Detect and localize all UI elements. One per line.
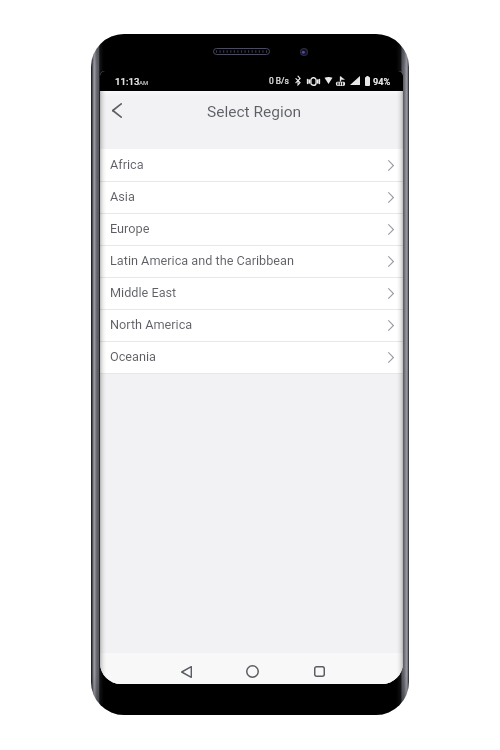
button[interactable]: Oceania [100, 342, 403, 373]
button[interactable]: Europe [100, 214, 403, 245]
button[interactable]: Back [103, 91, 131, 130]
staticText: Select Region [207, 103, 302, 121]
button[interactable]: Home [229, 656, 275, 684]
staticText: 0 B/s [269, 76, 289, 86]
button[interactable]: North America [100, 310, 403, 341]
button[interactable]: Middle East [100, 278, 403, 309]
staticText: 11:13 [115, 76, 140, 87]
staticText: Middle East [110, 285, 388, 300]
staticText: AM [139, 79, 149, 86]
button[interactable]: Back [163, 656, 209, 684]
staticText: Asia [110, 189, 388, 204]
button[interactable]: Asia [100, 182, 403, 213]
staticText: Europe [110, 221, 388, 236]
staticText: 94% [373, 76, 391, 87]
staticText: Africa [110, 157, 388, 172]
button[interactable]: Recent apps [296, 656, 342, 684]
staticText: North America [110, 317, 388, 332]
button[interactable]: Africa [100, 149, 403, 181]
button[interactable]: Latin America and the Caribbean [100, 246, 403, 277]
staticText: Oceania [110, 349, 388, 364]
staticText: Latin America and the Caribbean [110, 253, 388, 268]
